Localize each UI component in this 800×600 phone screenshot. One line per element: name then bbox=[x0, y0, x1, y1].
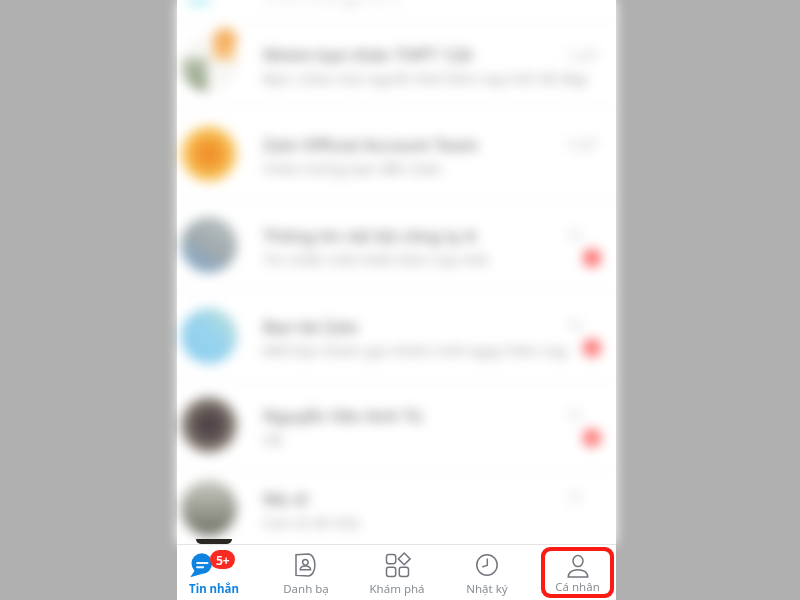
staticText: Mẹ ơi bbox=[263, 487, 309, 510]
button[interactable]: Zalo Official Account Team bbox=[177, 108, 616, 200]
staticText: Bạn: chào mọi người nhé hôm nay trời rất… bbox=[263, 68, 588, 88]
staticText: Mời bạn tham gia nhóm mới ngay hôm nay bbox=[263, 340, 568, 360]
staticText: Tin nhắn mới nhất hôm nay nhé bbox=[263, 249, 489, 269]
button[interactable]: Mẹ ơi bbox=[177, 470, 616, 546]
staticText: Nhóm bạn thân THPT 12A bbox=[263, 43, 473, 66]
other: Diary bbox=[476, 554, 498, 576]
button[interactable]: Discover bbox=[360, 547, 433, 598]
staticText: Bạn bè Zalo bbox=[263, 315, 359, 338]
staticText: 2 bbox=[589, 341, 596, 356]
staticText: 5+ bbox=[216, 552, 230, 568]
other: Contacts bbox=[295, 554, 317, 576]
staticText: Cá nhân bbox=[555, 579, 600, 594]
button[interactable]: Nguyễn Văn Anh Tú bbox=[177, 381, 616, 470]
staticText: 3 bbox=[589, 431, 596, 446]
staticText: Nhật ký bbox=[466, 581, 508, 597]
staticText: Danh bạ bbox=[283, 581, 329, 597]
button[interactable]: Thông tin nội bộ công ty A bbox=[177, 200, 616, 291]
button[interactable]: Profile bbox=[545, 551, 610, 594]
staticText: 1 bbox=[589, 251, 596, 266]
staticText: Tin nhắn bbox=[189, 581, 239, 597]
button[interactable]: Contacts bbox=[269, 547, 342, 598]
staticText: Con ơi về nhà bbox=[263, 512, 359, 532]
button[interactable]: Bạn bè Zalo bbox=[177, 291, 616, 381]
staticText: Chào mừng bạn đến Zalo bbox=[263, 158, 442, 178]
button[interactable]: Nhóm bạn thân THPT 12A bbox=[177, 21, 616, 108]
staticText: Ok bbox=[263, 429, 283, 449]
staticText: Nguyễn Văn Anh Tú bbox=[263, 404, 423, 427]
button[interactable]: Diary bbox=[450, 547, 523, 598]
staticText: Thông tin nội bộ công ty A bbox=[263, 224, 477, 247]
other: Profile bbox=[567, 555, 589, 577]
other: Discover bbox=[386, 554, 408, 576]
staticText: Khám phá bbox=[369, 581, 425, 597]
staticText: Zalo Official Account Team bbox=[263, 133, 478, 156]
button[interactable]: 5+ bbox=[177, 547, 250, 598]
